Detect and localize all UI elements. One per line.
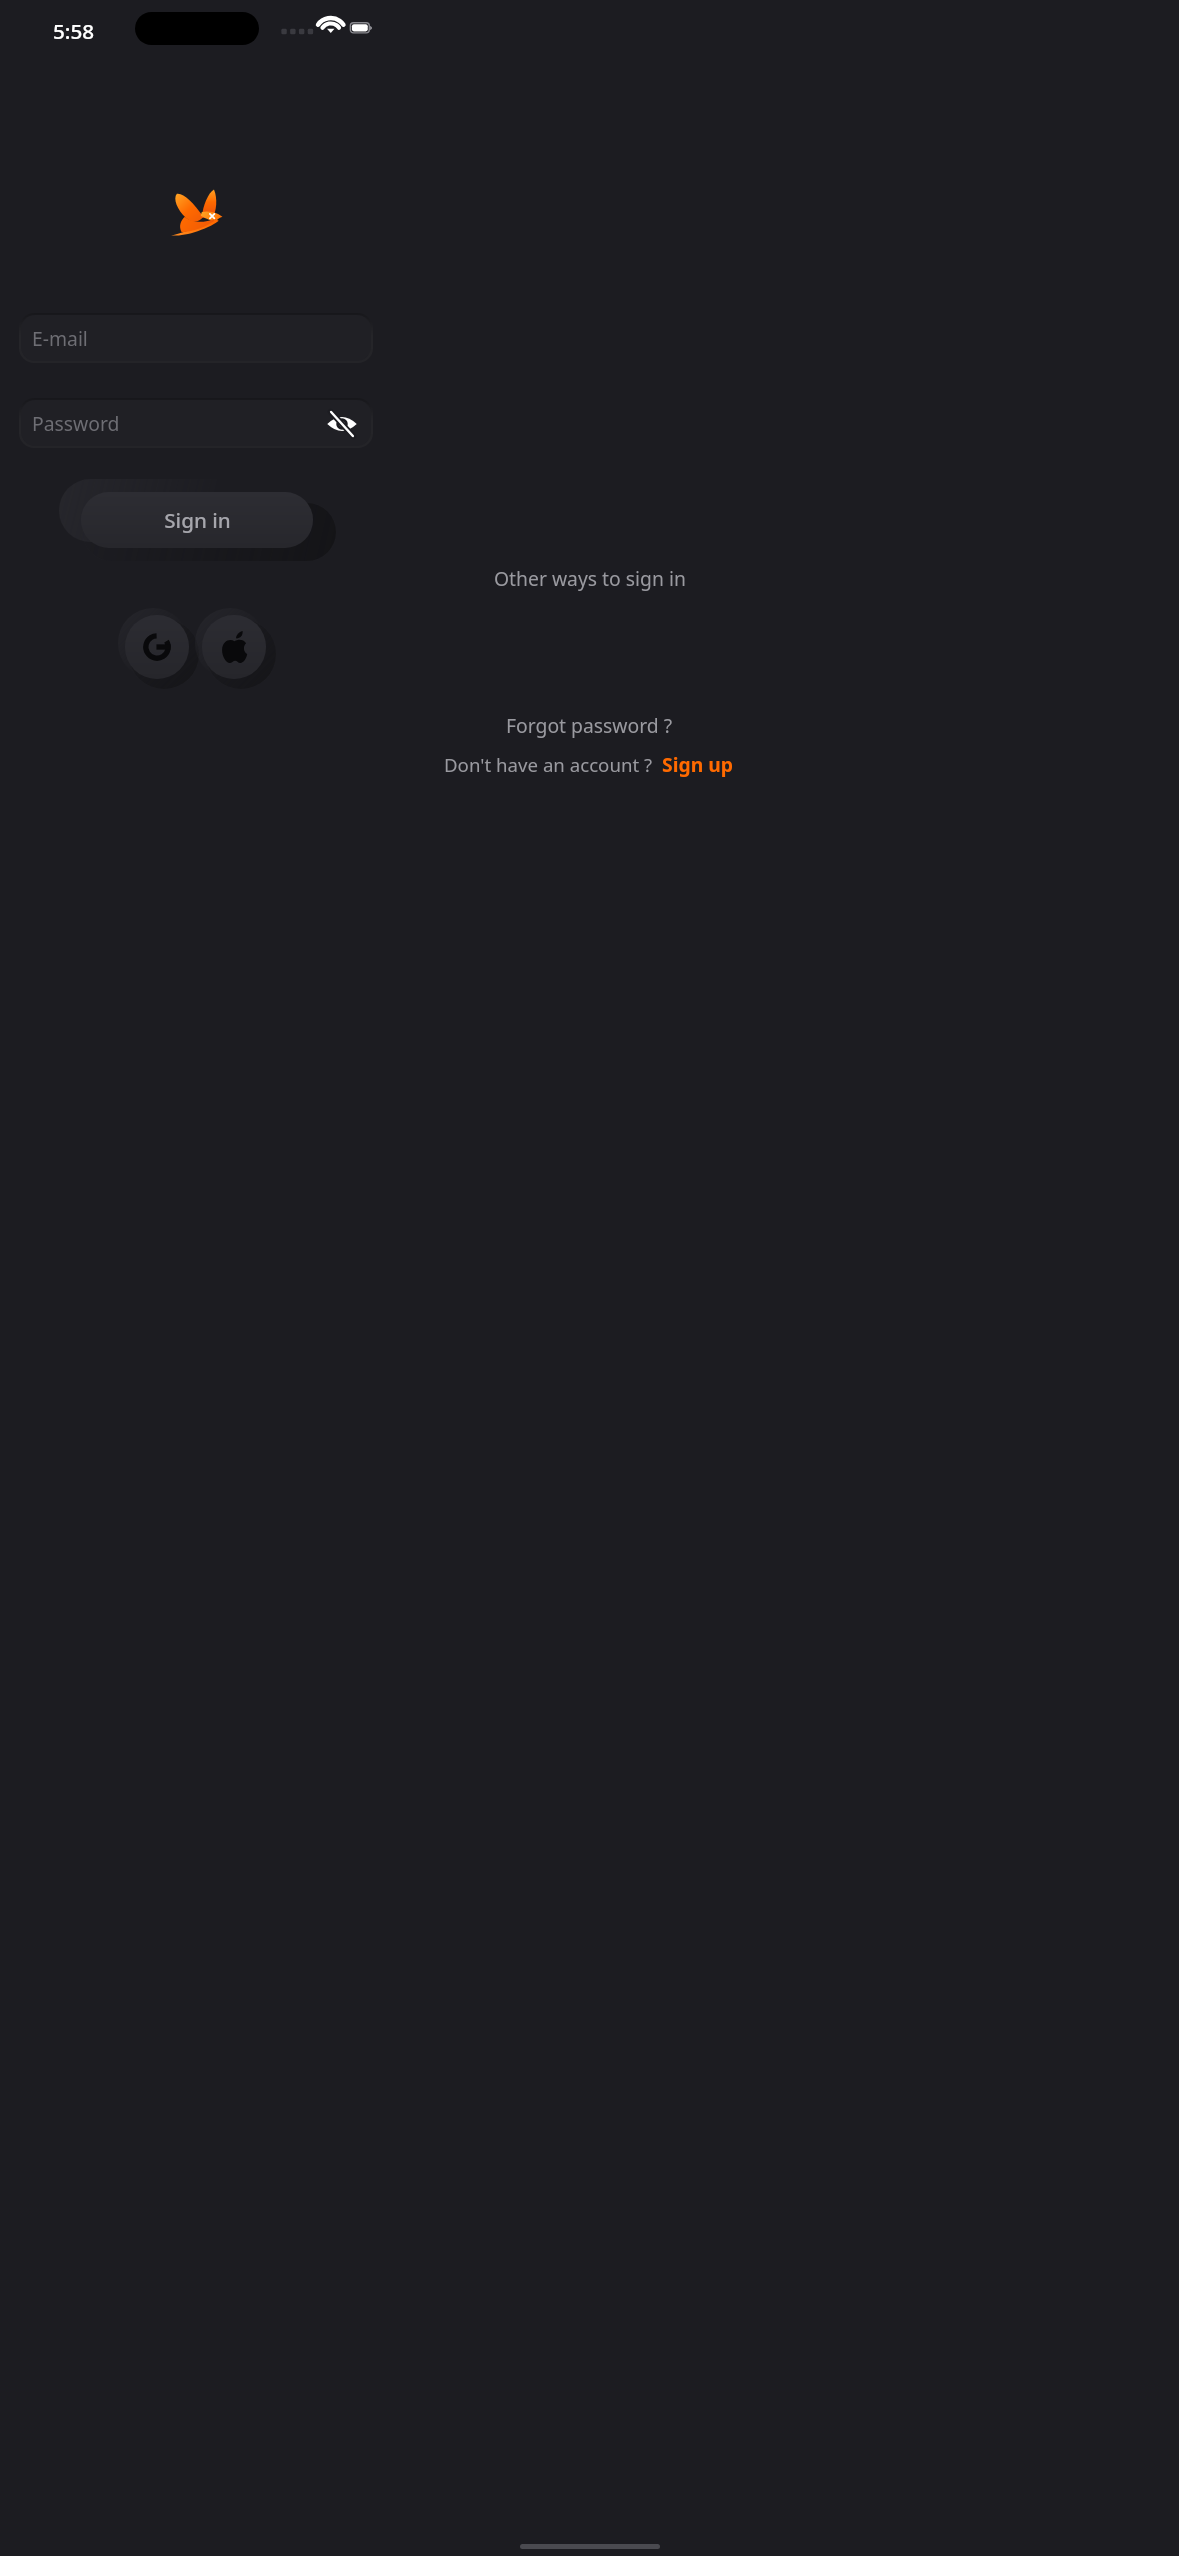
staticText: Don't have an account ?	[444, 752, 653, 777]
staticText: Password	[32, 410, 120, 436]
staticText: Sign in	[164, 506, 231, 534]
button[interactable]	[21, 400, 371, 446]
button[interactable]: Sign in with Google	[125, 615, 189, 679]
button[interactable]: Sign up	[660, 748, 736, 780]
button[interactable]: Forgot password ?	[496, 707, 683, 743]
button[interactable]	[21, 315, 371, 361]
staticText: Sign up	[662, 751, 734, 777]
staticText: E-mail	[32, 325, 88, 351]
button[interactable]: Show password	[323, 405, 360, 442]
staticText: Forgot password ?	[506, 712, 673, 738]
staticText: 5:58	[53, 17, 95, 45]
button[interactable]: Sign in	[81, 492, 313, 548]
button[interactable]: Sign in with Apple	[202, 615, 266, 679]
staticText: Other ways to sign in	[494, 565, 686, 591]
